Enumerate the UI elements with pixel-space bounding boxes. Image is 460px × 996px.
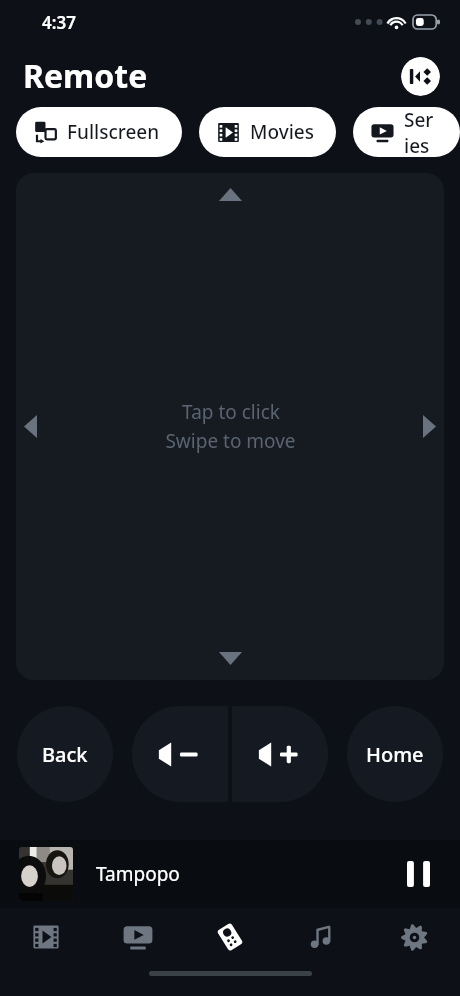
staticText: Remote <box>23 54 148 98</box>
button[interactable]: Pause <box>398 854 438 894</box>
button[interactable]: Series <box>353 107 460 157</box>
staticText: Tampopo <box>96 861 180 887</box>
button[interactable]: TV Shows <box>92 908 184 966</box>
staticText: Fullscreen <box>67 119 160 145</box>
staticText: Home <box>366 741 424 768</box>
button[interactable]: Remote <box>184 908 276 966</box>
staticText: Back <box>42 741 88 768</box>
button[interactable]: Settings <box>368 908 460 966</box>
staticText: 4:37 <box>42 11 76 34</box>
button[interactable]: Music <box>276 908 368 966</box>
staticText: Tap to click <box>182 399 280 425</box>
button[interactable]: Movies <box>199 107 336 157</box>
button[interactable]: Movies <box>0 908 92 966</box>
button[interactable]: Volume up <box>232 706 328 802</box>
button[interactable]: Touchpad, tap to click, swipe to move <box>16 173 444 680</box>
button[interactable]: Fullscreen <box>16 107 182 157</box>
button[interactable]: Back <box>17 706 113 802</box>
staticText: Swipe to move <box>165 428 296 454</box>
button[interactable]: Home <box>347 706 443 802</box>
staticText: Series <box>404 107 438 157</box>
button[interactable]: Tampopo <box>0 840 460 908</box>
button[interactable]: Volume down <box>132 706 228 802</box>
staticText: Movies <box>250 119 314 145</box>
button[interactable]: Kodi host <box>401 57 440 96</box>
